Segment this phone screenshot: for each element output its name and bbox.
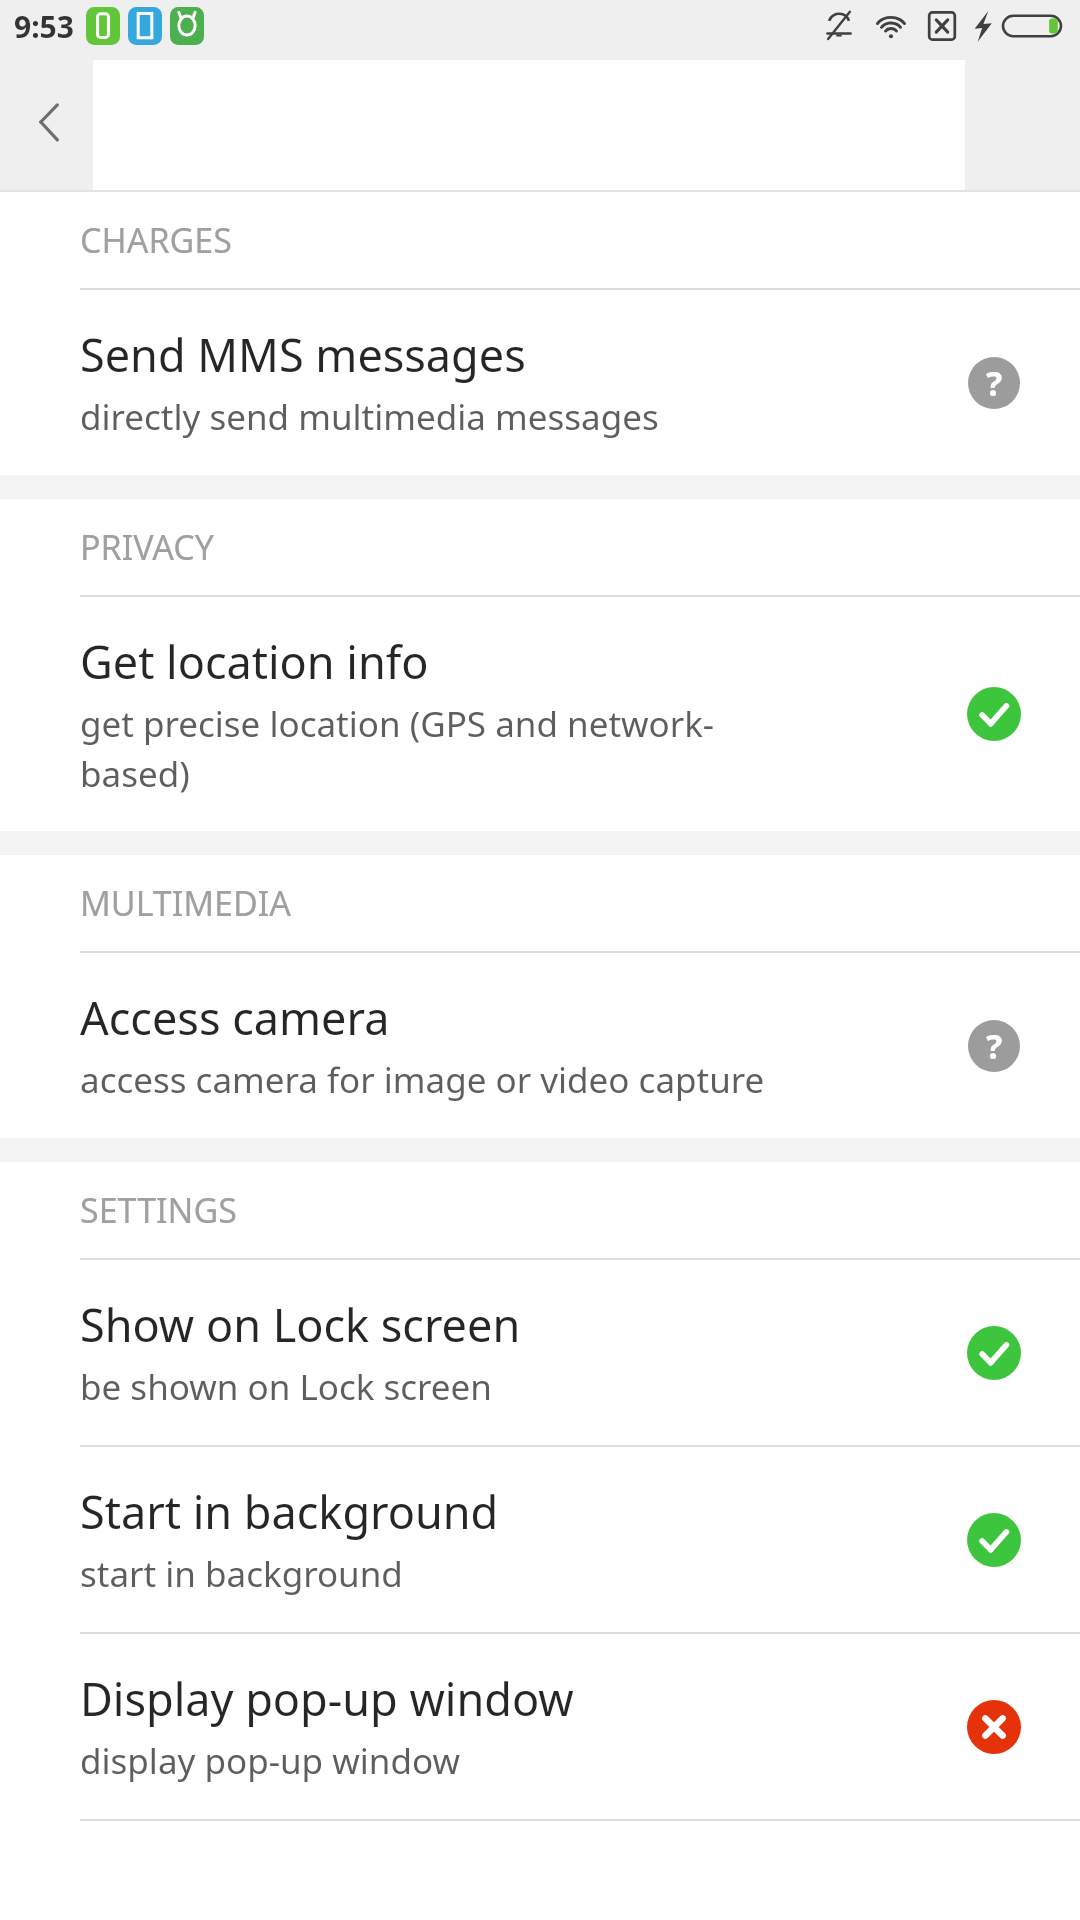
button[interactable]: Display pop-up window	[0, 1634, 1080, 1821]
staticText: Get location info	[80, 631, 429, 692]
staticText: MULTIMEDIA	[80, 880, 292, 926]
button[interactable]: Get location info	[0, 597, 1080, 831]
staticText: display pop-up window	[80, 1737, 460, 1785]
staticText: PRIVACY	[80, 524, 215, 570]
staticText: get precise location (GPS and network- b…	[80, 700, 715, 797]
staticText: Access camera	[80, 987, 390, 1048]
staticText: Send MMS messages	[80, 324, 526, 385]
staticText: directly send multimedia messages	[80, 393, 659, 441]
button[interactable]: Ask	[966, 1018, 1022, 1074]
staticText: be shown on Lock screen	[80, 1363, 492, 1411]
staticText: Display pop-up window	[80, 1668, 574, 1729]
staticText: Start in background	[80, 1481, 499, 1542]
button[interactable]: Start in background	[0, 1447, 1080, 1634]
staticText: start in background	[80, 1550, 403, 1598]
staticText: Show on Lock screen	[80, 1294, 521, 1355]
button[interactable]: Back	[0, 52, 100, 192]
button[interactable]: Allowed	[966, 686, 1022, 742]
staticText: access camera for image or video capture	[80, 1056, 765, 1104]
button[interactable]: Show on Lock screen	[0, 1260, 1080, 1447]
button[interactable]: Allowed	[966, 1325, 1022, 1381]
staticText: 9:53	[14, 6, 74, 47]
button[interactable]: Denied	[966, 1699, 1022, 1755]
button[interactable]: Access camera	[0, 953, 1080, 1138]
button[interactable]: Send MMS messages	[0, 290, 1080, 475]
staticText: ?	[986, 360, 1003, 406]
button[interactable]	[93, 60, 965, 192]
staticText: SETTINGS	[80, 1187, 237, 1233]
staticText: ?	[986, 1023, 1003, 1069]
button[interactable]: Allowed	[966, 1512, 1022, 1568]
button[interactable]: Ask	[966, 355, 1022, 411]
staticText: CHARGES	[80, 217, 232, 263]
